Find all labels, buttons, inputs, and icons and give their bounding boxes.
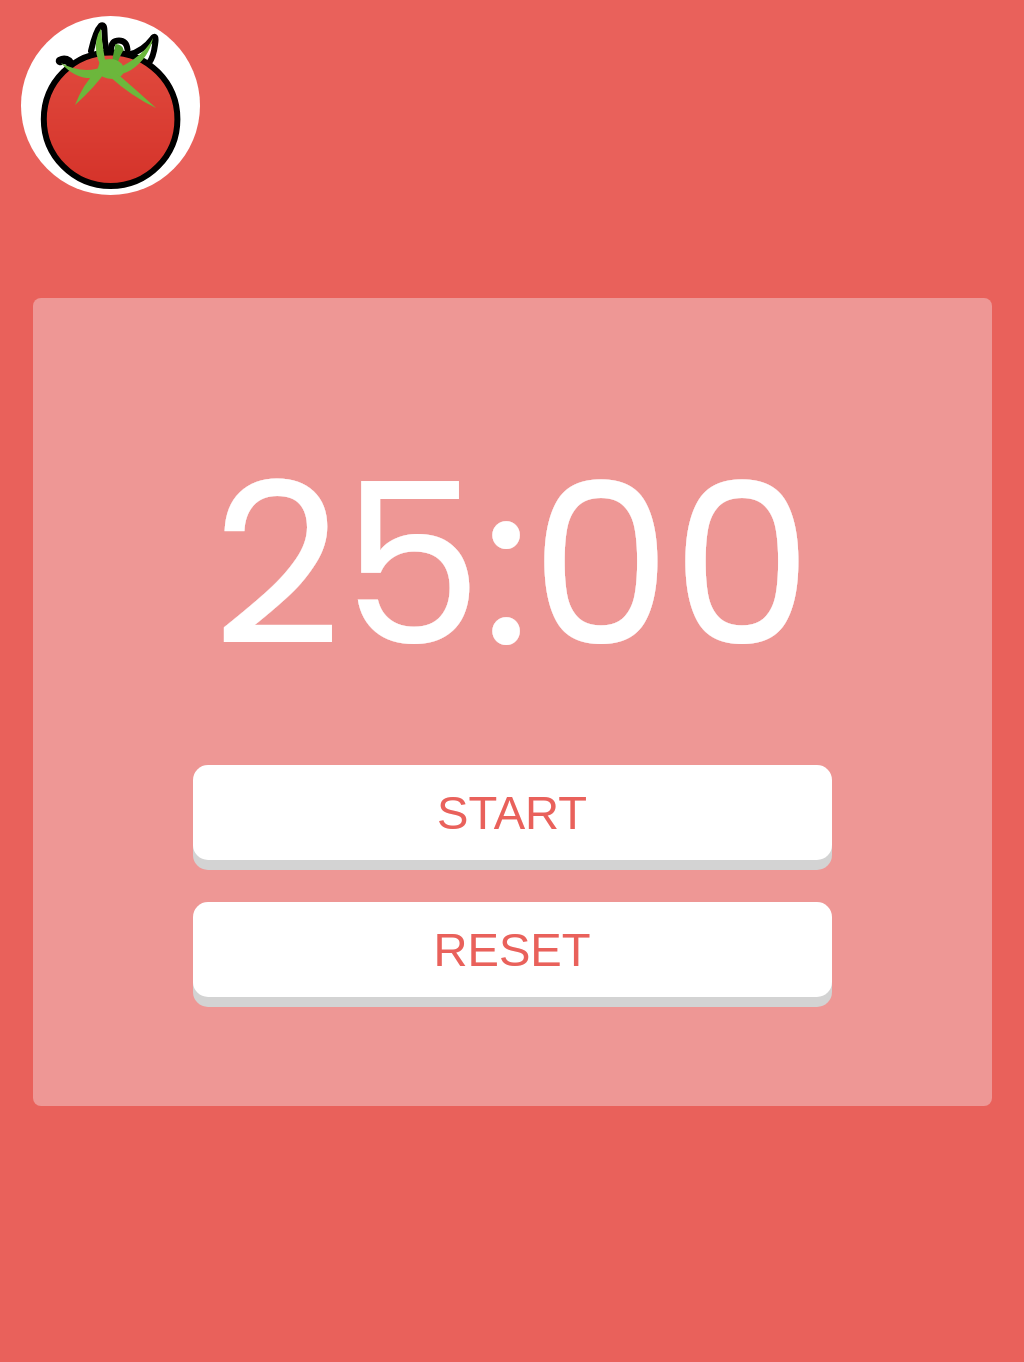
- button[interactable]: [193, 765, 832, 870]
- button[interactable]: [193, 902, 832, 1007]
- button[interactable]: Pomodoro timer logo: [21, 16, 200, 195]
